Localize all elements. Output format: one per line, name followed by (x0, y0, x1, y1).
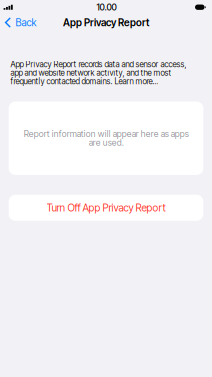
staticText: App Privacy Report records data and sens… (10, 60, 186, 86)
staticText: App Privacy Report (63, 17, 149, 28)
staticText: Report information will appear here as a… (23, 129, 188, 147)
button[interactable]: Turn Off App Privacy Report (0, 195, 212, 221)
staticText: Turn Off App Privacy Report (46, 202, 165, 213)
staticText: 10.00 (96, 2, 116, 12)
staticText: Back (15, 17, 36, 28)
button[interactable]: Back (0, 15, 42, 30)
